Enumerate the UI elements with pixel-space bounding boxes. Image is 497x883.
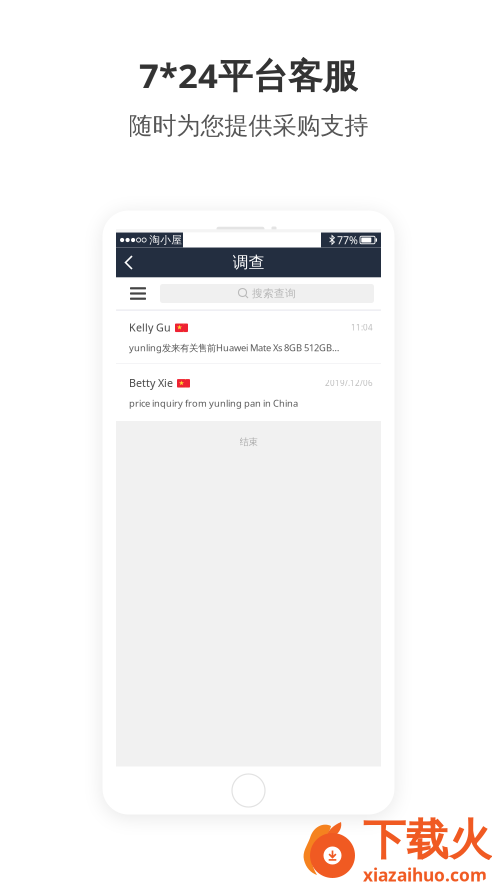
staticText: xiazaihuo.com bbox=[363, 863, 487, 883]
staticText: 下载火 bbox=[363, 814, 492, 866]
staticText: price inquiry from yunling pan in China bbox=[129, 397, 298, 409]
button[interactable]: Back bbox=[116, 247, 142, 277]
button[interactable]: Menu bbox=[116, 278, 160, 308]
staticText: 调查 bbox=[232, 253, 264, 272]
staticText: Betty Xie bbox=[129, 376, 173, 390]
staticText: 77% bbox=[337, 233, 358, 247]
staticText: · bbox=[185, 375, 186, 383]
staticText: 11:04 bbox=[351, 322, 373, 333]
staticText: 7*24平台客服 bbox=[139, 52, 358, 98]
staticText: ★ bbox=[178, 379, 184, 387]
staticText: ★ bbox=[176, 323, 182, 331]
staticText: Kelly Gu bbox=[129, 320, 171, 334]
staticText: · bbox=[183, 327, 184, 335]
button[interactable]: 搜索查询 bbox=[160, 284, 374, 303]
staticText: 搜索查询 bbox=[252, 287, 296, 300]
staticText: 淘小屋 bbox=[149, 233, 182, 247]
staticText: · bbox=[185, 383, 186, 390]
staticText: 2019/.12/06 bbox=[325, 377, 373, 388]
button[interactable]: Kelly Gu bbox=[116, 311, 381, 363]
staticText: · bbox=[183, 320, 184, 327]
button[interactable]: Betty Xie bbox=[116, 364, 381, 421]
staticText: 随时为您提供采购支持 bbox=[128, 111, 368, 140]
staticText: 结束 bbox=[239, 436, 257, 448]
staticText: yunling发来有关售前Huawei Mate Xs 8GB 512GB… bbox=[129, 341, 339, 354]
